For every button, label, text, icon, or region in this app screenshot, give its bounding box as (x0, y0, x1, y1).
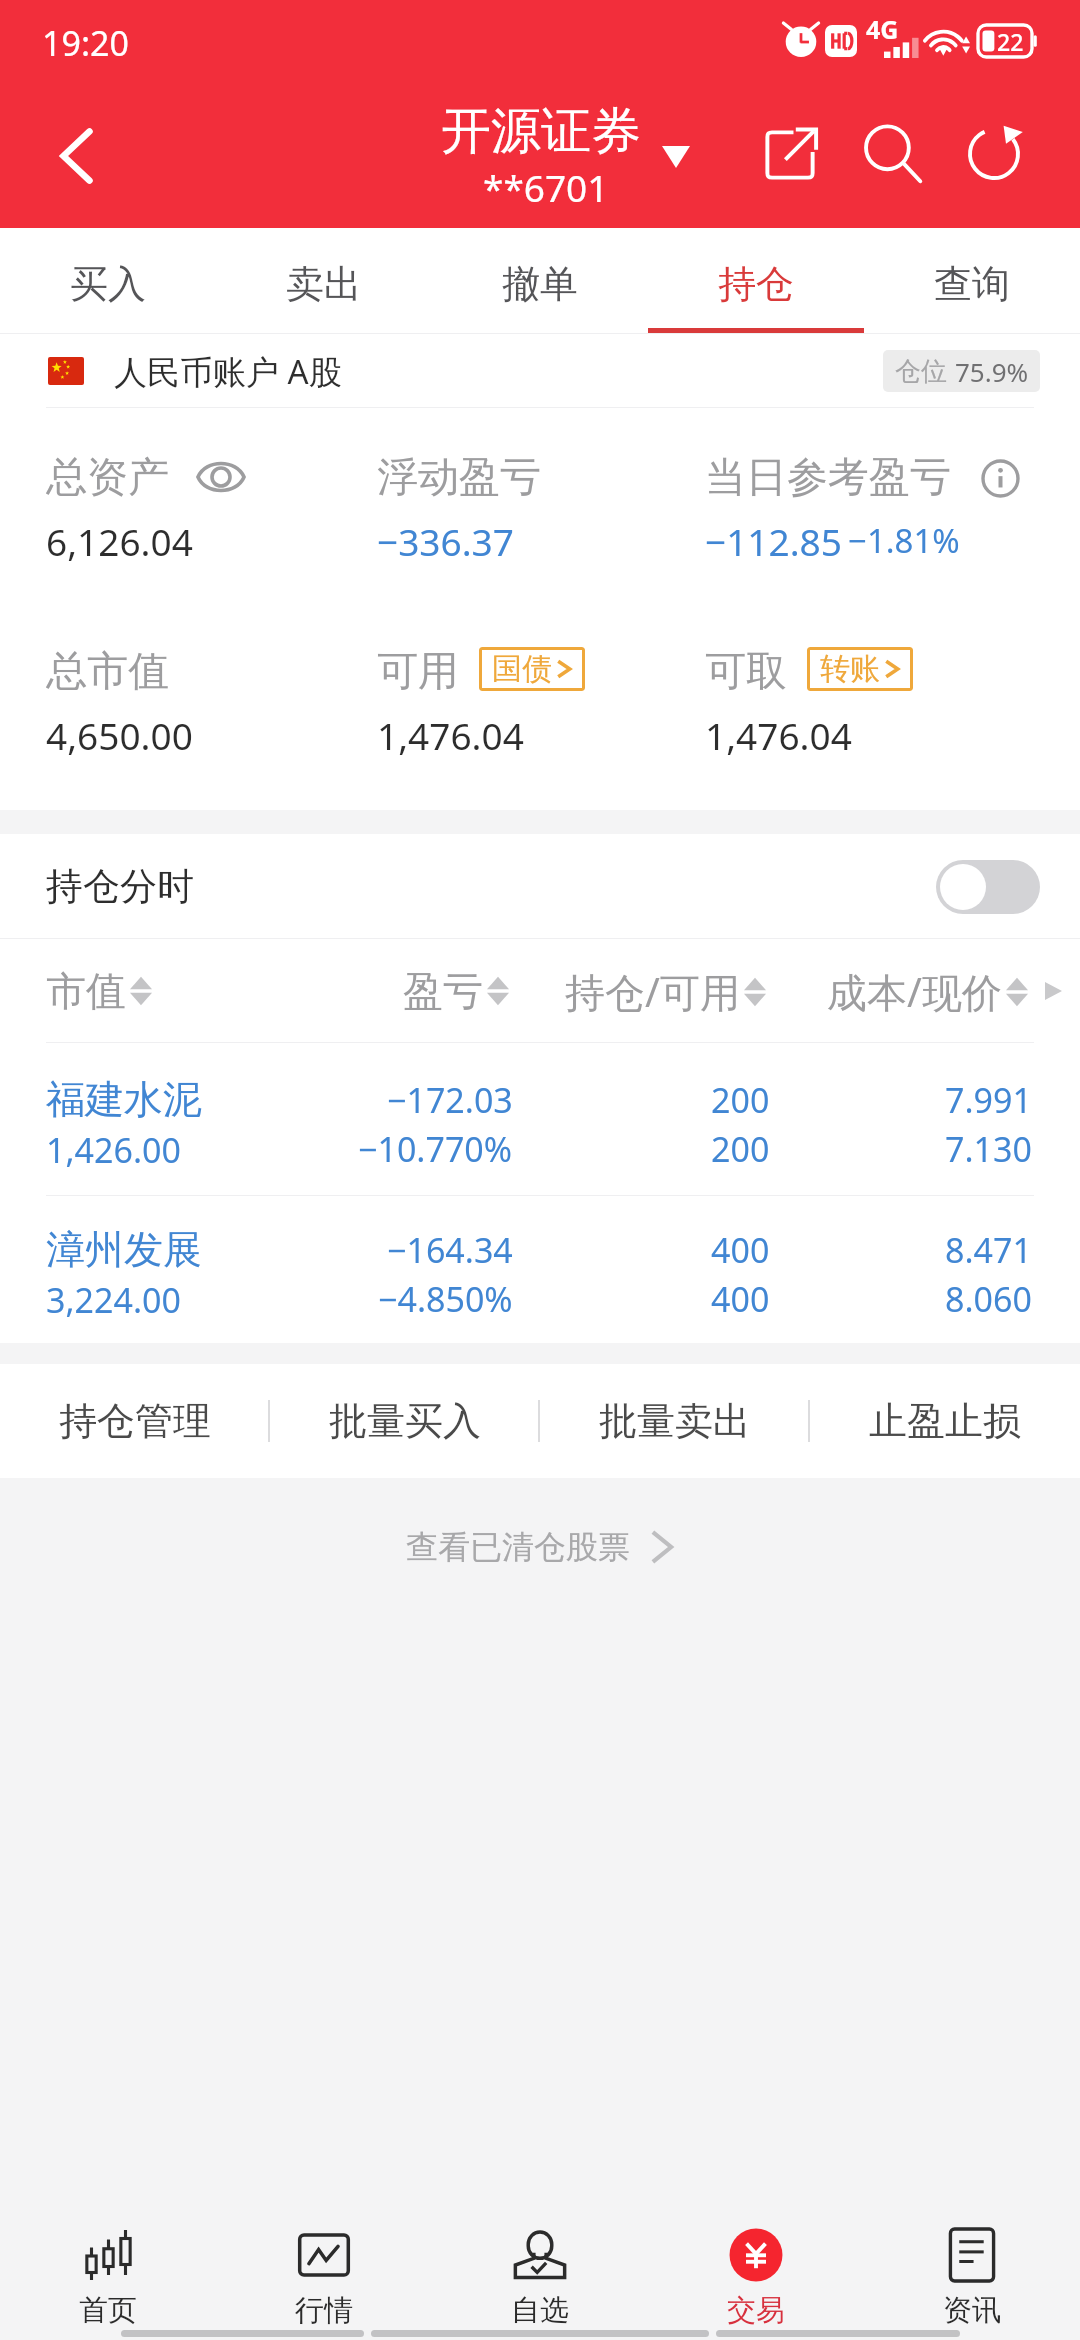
staticText: 持仓分时 (46, 863, 194, 910)
staticText: 4,650.00 (46, 710, 193, 760)
staticText: 可用 (377, 646, 459, 698)
staticText: −4.850% (378, 1276, 513, 1322)
button[interactable]: Refresh (946, 106, 1042, 202)
button[interactable]: 首页 (0, 2200, 216, 2329)
button[interactable]: Toggle amount visibility (197, 459, 245, 495)
button[interactable]: 福建水泥 (0, 1043, 1080, 1195)
staticText: 市值 (46, 966, 126, 1016)
staticText: 8.471 (945, 1227, 1032, 1273)
staticText: 批量卖出 (599, 1397, 751, 1445)
staticText: 批量买入 (329, 1397, 481, 1445)
button[interactable]: 止盈止损 (810, 1364, 1080, 1478)
staticText: 成本/现价 (827, 964, 1002, 1019)
staticText: 可取 (705, 646, 787, 698)
button[interactable]: 撤单 (432, 228, 648, 334)
staticText: 200 (711, 1126, 770, 1172)
button[interactable]: 交易 (648, 2200, 864, 2329)
button[interactable]: Search (845, 106, 941, 202)
staticText: 200 (711, 1077, 770, 1123)
button[interactable]: 市值 (46, 966, 309, 1016)
staticText: 国债 (492, 650, 552, 688)
staticText: 仓位 (895, 355, 947, 388)
staticText: −1.81% (848, 518, 960, 563)
staticText: 4G (866, 12, 899, 46)
button[interactable]: 成本/现价 (767, 964, 1029, 1019)
staticText: 总资产 (46, 452, 169, 504)
staticText: 买入 (70, 260, 146, 308)
staticText: 1,476.04 (705, 710, 852, 760)
staticText: −10.770% (358, 1126, 513, 1172)
button[interactable]: 行情 (216, 2200, 432, 2329)
button[interactable]: 漳州发展 (0, 1195, 1080, 1343)
button[interactable]: 资讯 (864, 2200, 1080, 2329)
staticText: 3,224.00 (46, 1277, 181, 1323)
staticText: 7.991 (945, 1077, 1032, 1123)
button[interactable]: Intraday chart toggle (936, 860, 1040, 914)
staticText: 总市值 (46, 646, 169, 698)
staticText: 持仓管理 (59, 1397, 211, 1445)
staticText: −172.03 (387, 1077, 513, 1123)
staticText: 1,476.04 (377, 710, 524, 760)
button[interactable]: 持仓/可用 (510, 964, 767, 1019)
button[interactable]: 卖出 (216, 228, 432, 334)
staticText: 福建水泥 (46, 1075, 202, 1124)
staticText: 漳州发展 (46, 1225, 202, 1274)
staticText: 自选 (511, 2292, 569, 2329)
button[interactable]: Info (981, 459, 1020, 498)
button[interactable]: 仓位 (883, 350, 1040, 392)
staticText: 交易 (727, 2292, 785, 2329)
staticText: 撤单 (502, 260, 578, 308)
staticText: 75.9% (955, 354, 1029, 389)
staticText: 卖出 (286, 260, 362, 308)
button[interactable]: 国债 (479, 647, 585, 691)
staticText: −164.34 (387, 1227, 513, 1273)
staticText: 7.130 (945, 1126, 1032, 1172)
staticText: 22 (997, 26, 1024, 57)
staticText: 400 (711, 1276, 770, 1322)
button[interactable]: 持仓 (648, 228, 864, 334)
staticText: 6,126.04 (46, 516, 193, 566)
staticText: 转账 (820, 650, 880, 688)
staticText: **6701 (483, 162, 609, 212)
staticText: 人民币账户 A股 (114, 349, 342, 394)
staticText: 查看已清仓股票 (406, 1527, 630, 1567)
staticText: −336.37 (377, 516, 514, 566)
staticText: 行情 (295, 2292, 353, 2329)
staticText: 400 (711, 1227, 770, 1273)
staticText: 持仓 (718, 260, 794, 308)
button[interactable]: 批量买入 (270, 1364, 540, 1478)
staticText: 8.060 (945, 1276, 1032, 1322)
button[interactable]: Share (742, 107, 838, 203)
staticText: 持仓/可用 (565, 964, 740, 1019)
staticText: 止盈止损 (869, 1397, 1021, 1445)
staticText: 开源证券 (441, 100, 641, 163)
button[interactable]: 批量卖出 (540, 1364, 810, 1478)
button[interactable]: 盈亏 (309, 966, 510, 1016)
staticText: −112.85 (705, 516, 842, 566)
staticText: 1,426.00 (46, 1127, 181, 1173)
button[interactable]: 买入 (0, 228, 216, 334)
button[interactable]: Back (28, 108, 124, 204)
staticText: 19:20 (42, 20, 129, 66)
staticText: 当日参考盈亏 (705, 452, 951, 504)
button[interactable]: 查看已清仓股票 (406, 1525, 674, 1569)
button[interactable]: 转账 (807, 647, 913, 691)
staticText: 盈亏 (403, 966, 483, 1016)
button[interactable]: 查询 (864, 228, 1080, 334)
staticText: 浮动盈亏 (377, 452, 541, 504)
staticText: 资讯 (943, 2292, 1001, 2329)
staticText: 首页 (79, 2292, 137, 2329)
button[interactable]: 自选 (432, 2200, 648, 2329)
staticText: 查询 (934, 260, 1010, 308)
button[interactable]: 持仓管理 (0, 1364, 270, 1478)
